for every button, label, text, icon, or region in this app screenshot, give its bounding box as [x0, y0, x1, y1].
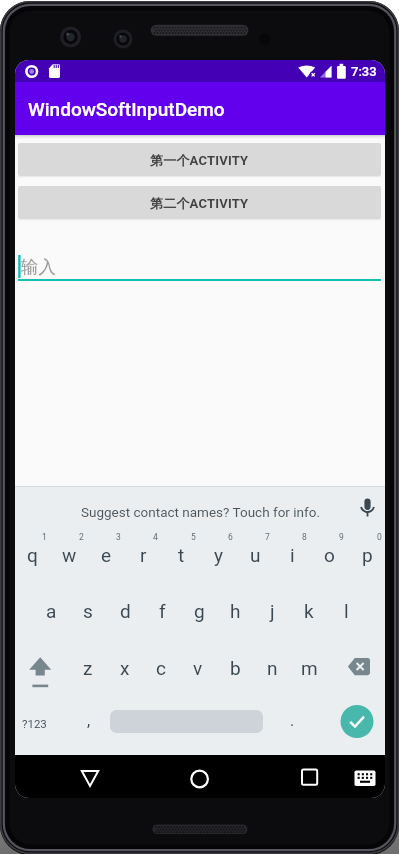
staticText: t	[178, 544, 185, 566]
button[interactable]	[290, 755, 330, 798]
staticText: o	[324, 544, 335, 566]
button[interactable]: d	[107, 594, 143, 628]
staticText: 9	[339, 532, 344, 542]
staticText: 5	[191, 532, 196, 542]
button[interactable]: 第二个ACTIVITY	[18, 186, 381, 219]
staticText: r	[140, 544, 147, 566]
button[interactable]: ?123	[16, 706, 52, 740]
button[interactable]	[180, 755, 220, 798]
staticText: p	[362, 544, 373, 566]
staticText: d	[120, 600, 131, 622]
button[interactable]: c	[143, 651, 179, 685]
button[interactable]: 输入	[18, 255, 381, 278]
button[interactable]: y	[200, 538, 236, 572]
button[interactable]: e	[88, 538, 124, 572]
button[interactable]: f	[144, 594, 180, 628]
staticText: ?123	[22, 717, 47, 730]
button[interactable]: v	[180, 651, 216, 685]
button[interactable]: u	[237, 538, 273, 572]
staticText: h	[230, 600, 241, 622]
staticText: n	[267, 657, 278, 679]
staticText: 7	[265, 532, 270, 542]
staticText: 8	[302, 532, 307, 542]
staticText: 4	[153, 532, 158, 542]
button[interactable]	[70, 755, 110, 798]
button[interactable]: k	[291, 594, 327, 628]
staticText: u	[250, 544, 261, 566]
staticText: i	[290, 544, 295, 566]
button[interactable]: .	[274, 703, 310, 737]
button[interactable]: h	[217, 594, 253, 628]
staticText: q	[27, 544, 38, 566]
staticText: Suggest contact names? Touch for info.	[81, 504, 320, 520]
staticText: w	[62, 544, 77, 566]
button[interactable]: t	[163, 538, 199, 572]
button[interactable]: w	[51, 538, 87, 572]
button[interactable]: q	[15, 538, 50, 572]
button[interactable]	[340, 705, 374, 739]
button[interactable]: i	[274, 538, 310, 572]
staticText: WindowSoftInputDemo	[28, 98, 225, 120]
button[interactable]: 第一个ACTIVITY	[18, 143, 381, 176]
staticText: ,	[87, 711, 91, 730]
staticText: g	[194, 600, 205, 622]
staticText: v	[193, 657, 203, 679]
staticText: l	[344, 600, 349, 622]
button[interactable]: s	[70, 594, 106, 628]
staticText: f	[159, 600, 166, 622]
button[interactable]: r	[125, 538, 161, 572]
button[interactable]: Suggest contact names? Touch for info.	[15, 492, 385, 531]
staticText: x	[120, 657, 130, 679]
button[interactable]: g	[181, 594, 217, 628]
staticText: 3	[116, 532, 121, 542]
staticText: 0	[377, 532, 382, 542]
staticText: y	[214, 544, 223, 566]
button[interactable]: x	[107, 651, 143, 685]
staticText: a	[46, 600, 57, 622]
button[interactable]: l	[328, 594, 364, 628]
staticText: z	[83, 657, 93, 679]
button[interactable]: n	[254, 651, 290, 685]
staticText: b	[230, 657, 241, 679]
staticText: e	[101, 544, 112, 566]
staticText: k	[304, 600, 314, 622]
button[interactable]: ,	[71, 703, 107, 737]
button[interactable]: z	[70, 651, 106, 685]
staticText: j	[270, 600, 275, 622]
button[interactable]: p	[349, 538, 385, 572]
staticText: 1	[42, 532, 47, 542]
staticText: 输入	[21, 256, 56, 278]
button[interactable]	[347, 755, 385, 798]
staticText: 2	[79, 532, 84, 542]
staticText: s	[83, 600, 93, 622]
button[interactable]: a	[33, 594, 69, 628]
staticText: 7:33	[351, 64, 377, 79]
staticText: c	[156, 657, 166, 679]
staticText: 第二个ACTIVITY	[150, 195, 249, 211]
staticText: m	[301, 657, 318, 679]
staticText: 6	[228, 532, 233, 542]
button[interactable]: b	[217, 651, 253, 685]
button[interactable]: j	[254, 594, 290, 628]
staticText: 第一个ACTIVITY	[150, 152, 249, 168]
button[interactable]: o	[311, 538, 347, 572]
staticText: .	[290, 711, 295, 730]
button[interactable]: m	[291, 651, 327, 685]
